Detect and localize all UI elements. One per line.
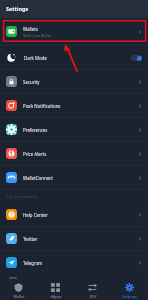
button[interactable]: WalletConnect [0,166,148,189]
staticText: WalletConnect [23,175,53,181]
staticText: Settings [122,294,137,299]
staticText: Twitter [23,236,38,242]
staticText: Settings [6,5,29,12]
button[interactable]: Telegram [0,251,148,274]
staticText: Price Alerts [23,151,47,157]
staticText: dApps [50,294,62,299]
button[interactable]: DEX [74,277,111,300]
button[interactable]: Dark Mode toggle [131,55,142,61]
staticText: Multi-Coin Wallet [23,33,52,38]
button[interactable]: Dark Mode [0,46,148,69]
staticText: Join Community [6,194,38,200]
button[interactable]: Wallet [0,277,37,300]
button[interactable]: Price Alerts [0,142,148,165]
staticText: DEX [89,294,97,299]
staticText: Telegram [23,260,43,266]
button[interactable]: Push Notifications [0,94,148,117]
staticText: Dark Mode [24,55,131,61]
staticText: Help Center [23,212,48,218]
button[interactable]: Twitter [0,227,148,250]
button[interactable]: Help Center [0,203,148,226]
button[interactable]: Wallets [0,18,148,45]
button[interactable]: Security [0,70,148,93]
staticText: Security [23,79,40,85]
staticText: Push Notifications [23,103,61,109]
button[interactable]: Settings [111,277,148,300]
button[interactable]: dApps [37,277,74,300]
staticText: Preferences [23,127,48,133]
staticText: Wallet [13,294,25,299]
staticText: Wallets [23,26,38,32]
button[interactable]: Preferences [0,118,148,141]
